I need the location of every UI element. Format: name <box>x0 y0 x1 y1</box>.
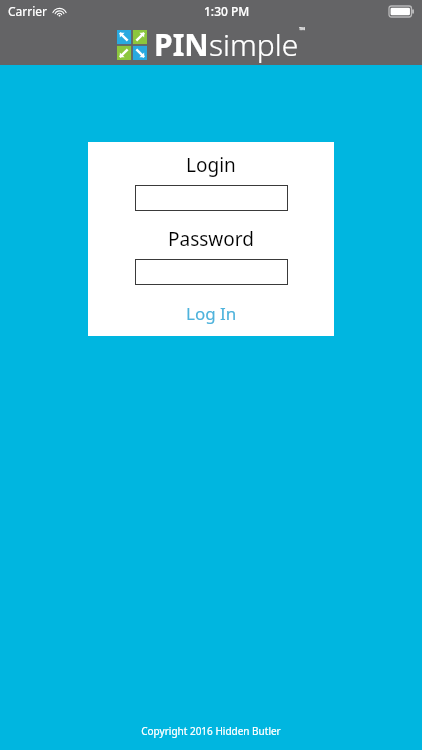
button[interactable] <box>135 185 288 211</box>
staticText: ™ <box>299 24 306 35</box>
button[interactable] <box>135 259 288 285</box>
staticText: Password <box>168 226 254 252</box>
staticText: Copyright 2016 Hidden Butler <box>0 724 422 738</box>
staticText: PIN <box>154 24 209 65</box>
staticText: Carrier <box>8 3 48 19</box>
staticText: Login <box>186 152 236 178</box>
staticText: 1:30 PM <box>204 3 250 19</box>
button[interactable]: Log In <box>168 299 255 328</box>
staticText: simple <box>209 24 299 65</box>
staticText: Log In <box>186 302 237 325</box>
